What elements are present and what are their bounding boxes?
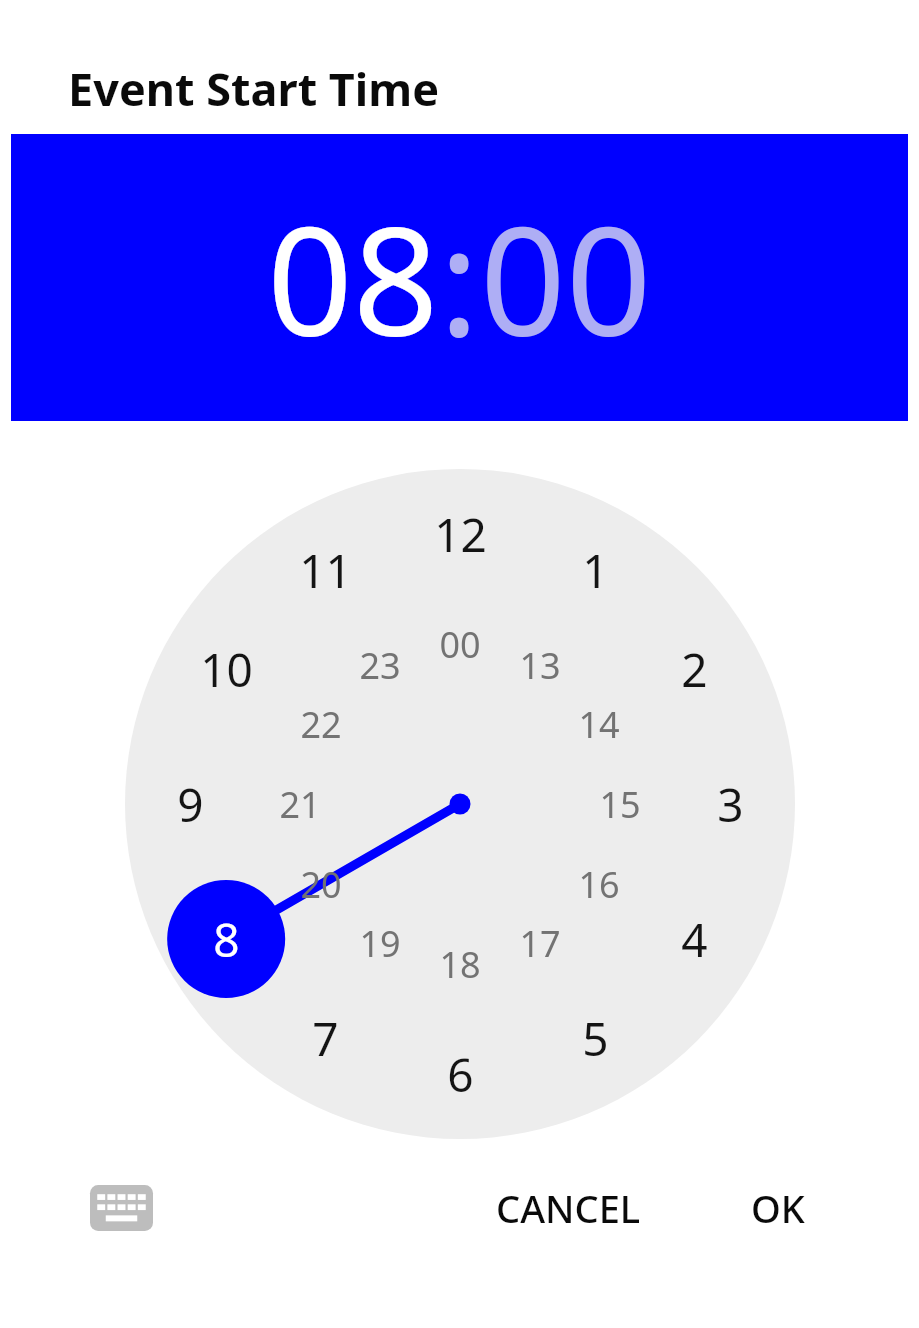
button[interactable]: 08 bbox=[267, 176, 439, 380]
staticText: 00 bbox=[439, 620, 481, 669]
staticText: 1 bbox=[582, 539, 609, 602]
staticText: 5 bbox=[582, 1007, 609, 1070]
staticText: 11 bbox=[299, 539, 352, 602]
staticText: 6 bbox=[447, 1043, 474, 1106]
button[interactable]: 5 bbox=[547, 1003, 643, 1073]
button[interactable]: 00 bbox=[480, 176, 652, 380]
button[interactable]: 6 bbox=[412, 1039, 508, 1109]
staticText: 14 bbox=[578, 700, 620, 749]
button[interactable]: 9 bbox=[142, 769, 238, 839]
staticText: 21 bbox=[279, 780, 321, 829]
staticText: 19 bbox=[359, 919, 401, 968]
staticText: 2 bbox=[681, 638, 708, 701]
staticText: 18 bbox=[439, 940, 481, 989]
button[interactable]: 14 bbox=[551, 689, 647, 759]
staticText: 13 bbox=[519, 641, 561, 690]
button[interactable]: CANCEL bbox=[482, 1174, 655, 1242]
button[interactable]: 18 bbox=[412, 929, 508, 999]
staticText: 15 bbox=[599, 780, 641, 829]
button[interactable]: 4 bbox=[646, 904, 742, 974]
staticText: 8 bbox=[213, 908, 240, 971]
staticText: 17 bbox=[519, 919, 561, 968]
staticText: Event Start Time bbox=[68, 58, 440, 119]
button[interactable]: 13 bbox=[492, 630, 588, 700]
button[interactable]: 17 bbox=[492, 908, 588, 978]
staticText: CANCEL bbox=[496, 1182, 641, 1234]
staticText: 22 bbox=[300, 700, 342, 749]
button[interactable]: OK bbox=[737, 1174, 819, 1242]
button[interactable]: 16 bbox=[551, 849, 647, 919]
staticText: 4 bbox=[681, 908, 708, 971]
button[interactable]: 23 bbox=[332, 630, 428, 700]
button[interactable]: 21 bbox=[252, 769, 348, 839]
button[interactable]: 22 bbox=[273, 689, 369, 759]
staticText: OK bbox=[751, 1182, 805, 1234]
button[interactable]: 20 bbox=[273, 849, 369, 919]
staticText: 7 bbox=[312, 1007, 339, 1070]
staticText: 20 bbox=[300, 860, 342, 909]
staticText: 10 bbox=[200, 638, 253, 701]
button[interactable]: 12 bbox=[412, 499, 508, 569]
staticText: 23 bbox=[359, 641, 401, 690]
staticText: 3 bbox=[717, 773, 744, 836]
button[interactable]: 19 bbox=[332, 908, 428, 978]
staticText: : bbox=[439, 176, 480, 380]
staticText: 16 bbox=[578, 860, 620, 909]
button[interactable]: 3 bbox=[682, 769, 778, 839]
button[interactable]: 1 bbox=[547, 535, 643, 605]
button[interactable]: 2 bbox=[646, 634, 742, 704]
button[interactable]: 10 bbox=[178, 634, 274, 704]
button[interactable]: Switch to text input mode bbox=[90, 1185, 153, 1231]
button[interactable]: 15 bbox=[572, 769, 668, 839]
button[interactable]: 8 bbox=[178, 904, 274, 974]
button[interactable]: 7 bbox=[277, 1003, 373, 1073]
button[interactable]: 11 bbox=[277, 535, 373, 605]
button[interactable]: 00 bbox=[412, 609, 508, 679]
staticText: 12 bbox=[434, 503, 487, 566]
staticText: 9 bbox=[177, 773, 204, 836]
